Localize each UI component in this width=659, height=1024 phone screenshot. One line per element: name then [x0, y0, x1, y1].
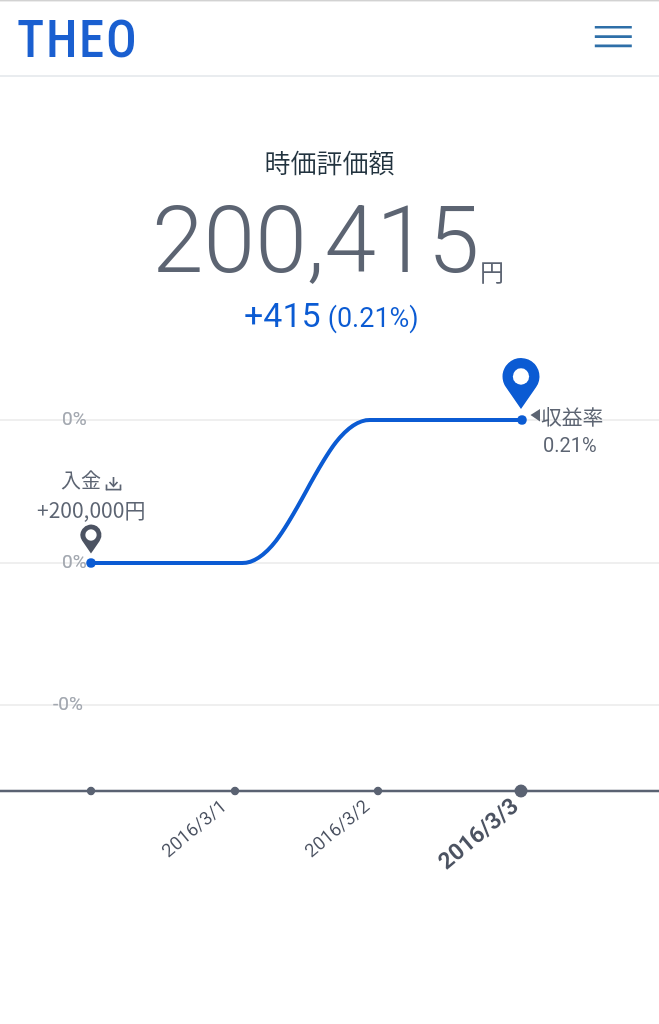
staticText: (0.21%)	[321, 302, 419, 334]
staticText: THEO	[17, 10, 139, 70]
staticText: 2016/3/1	[157, 795, 231, 862]
staticText: 0%	[62, 550, 87, 572]
button[interactable]: Menu	[589, 14, 635, 60]
staticText: 0.21%	[543, 433, 597, 456]
staticText: 0%	[62, 407, 87, 429]
staticText: 2016/3/3	[433, 792, 524, 875]
staticText: 収益率	[541, 401, 604, 431]
staticText: 時価評価額	[0, 143, 659, 181]
staticText: -0%	[53, 692, 83, 714]
button[interactable]: THEO	[13, 8, 143, 72]
staticText: +200,000円	[37, 494, 146, 524]
staticText: 200,415	[152, 186, 480, 295]
staticText: +415	[244, 295, 321, 335]
staticText: 2016/3/2	[300, 795, 374, 862]
staticText: 入金	[61, 465, 101, 494]
staticText: 円	[480, 253, 504, 288]
